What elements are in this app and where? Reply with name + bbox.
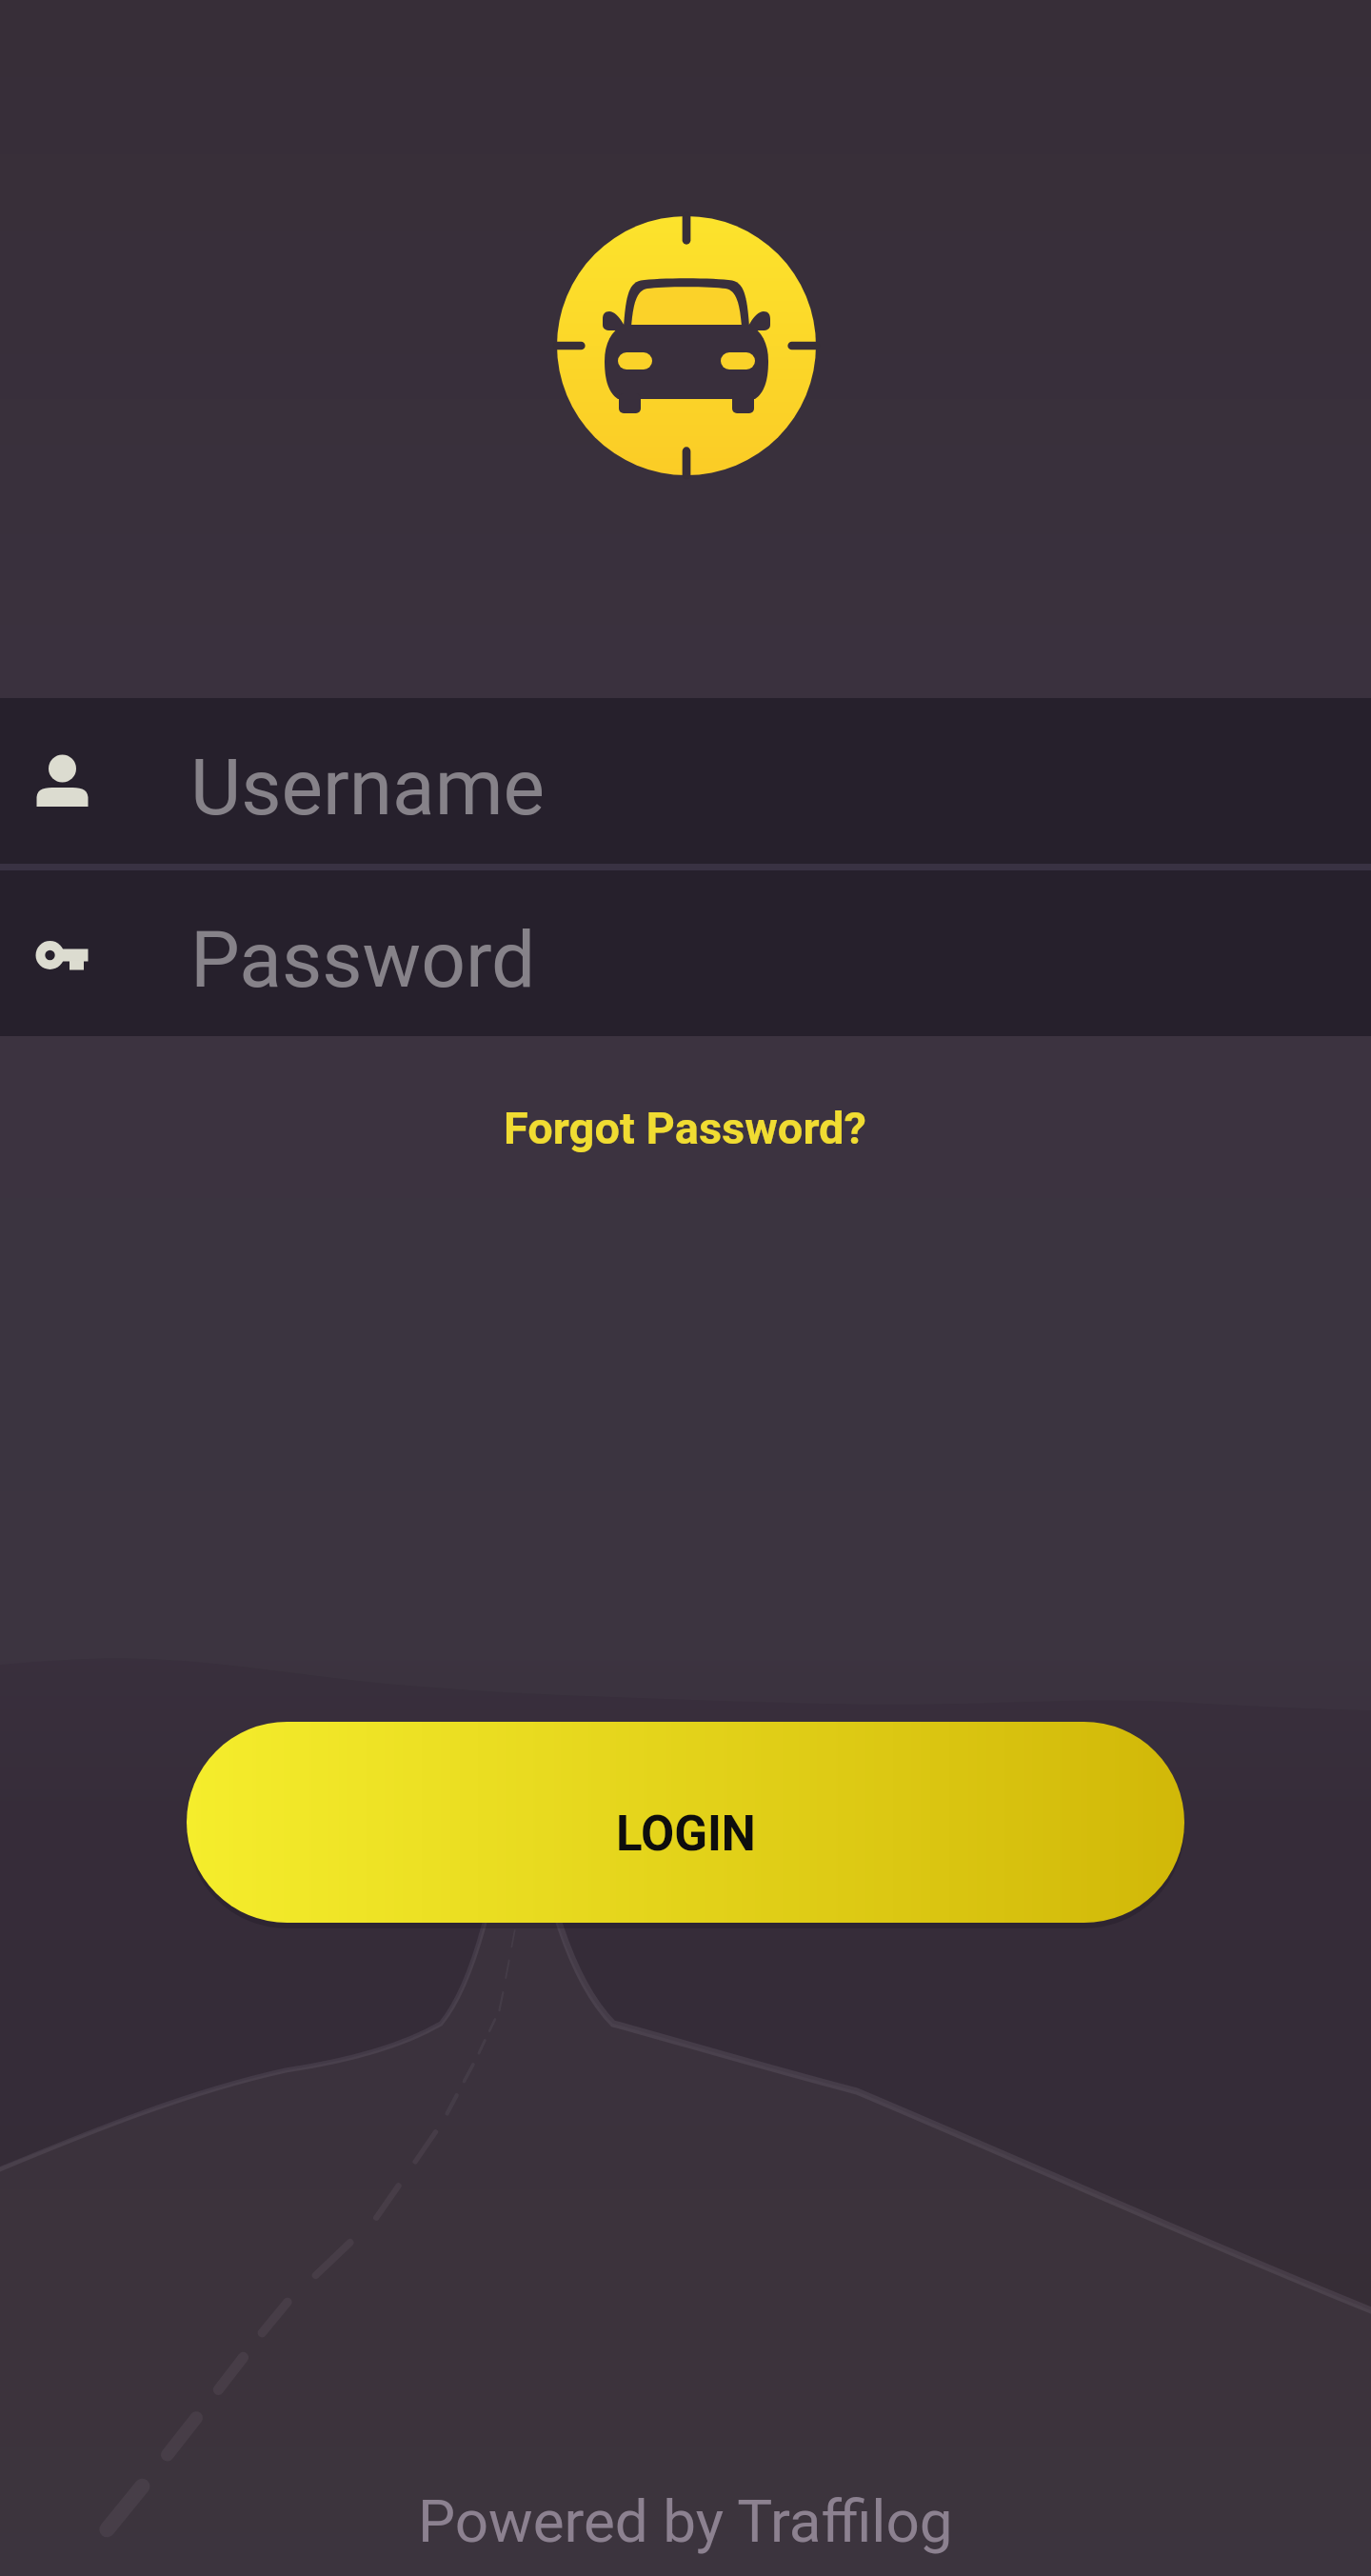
staticText: Password [190, 914, 536, 1006]
staticText: LOGIN [616, 1806, 756, 1863]
button[interactable]: Password [0, 870, 1371, 1036]
staticText: Forgot Password? [504, 1102, 867, 1154]
other: Traffilog logo [557, 216, 816, 475]
button[interactable]: LOGIN [187, 1722, 1184, 1923]
staticText: Powered by Traffilog [418, 2486, 953, 2556]
staticText: Username [190, 742, 546, 833]
button[interactable]: Username [0, 698, 1371, 864]
button[interactable]: Forgot Password? [481, 1090, 890, 1166]
